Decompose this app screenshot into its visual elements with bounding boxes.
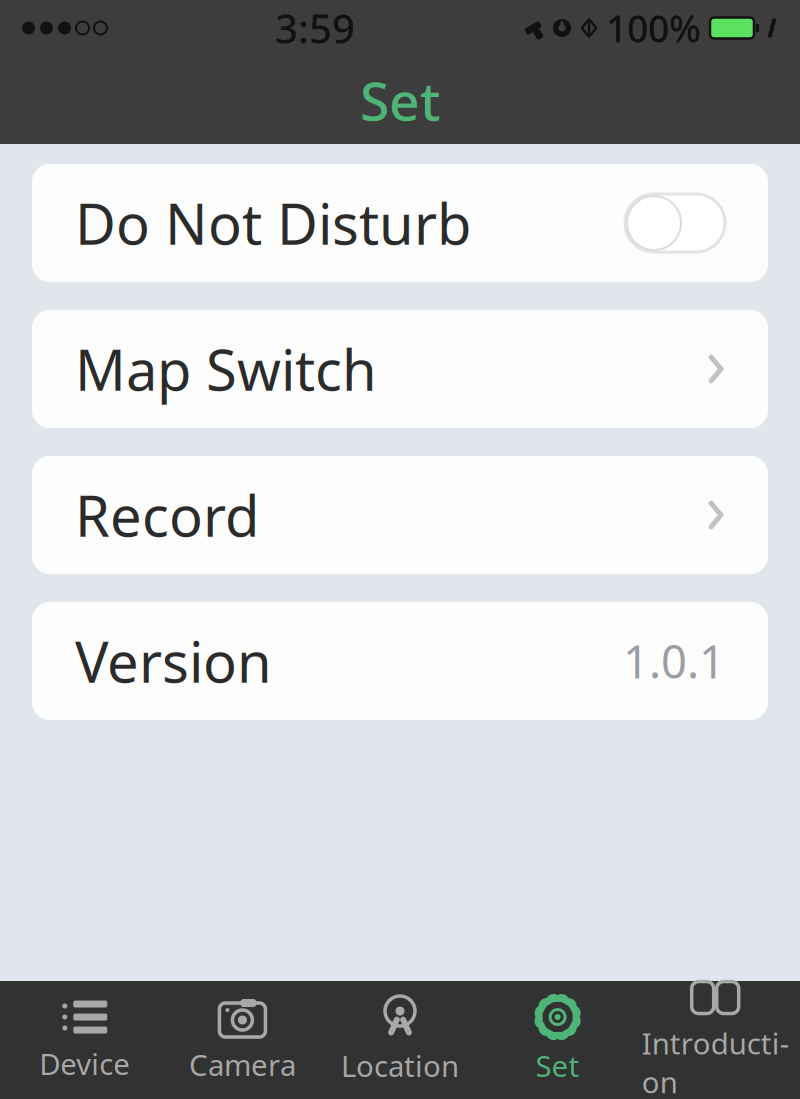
button[interactable]: Camera [164, 988, 321, 1092]
staticText: Location [341, 1046, 459, 1085]
staticText: Map Switch [75, 332, 377, 406]
staticText: 1.0.1 [623, 631, 725, 691]
staticText: 100% [606, 3, 701, 53]
button[interactable]: Location [321, 987, 479, 1093]
staticText: Record [75, 478, 259, 552]
staticText: 3:59 [275, 1, 355, 54]
staticText: Do Not Disturb [75, 186, 471, 260]
staticText: Set [536, 1046, 580, 1085]
button[interactable]: Set [479, 987, 636, 1093]
staticText: Set [360, 65, 440, 135]
button[interactable]: Map Switch [32, 310, 768, 428]
button[interactable]: Version [32, 602, 768, 720]
button[interactable]: Introduction [636, 970, 794, 1099]
button[interactable]: Record [32, 456, 768, 574]
staticText: Introduction [642, 1023, 789, 1099]
staticText: Device [39, 1044, 130, 1083]
staticText: Camera [189, 1045, 296, 1084]
staticText: Version [75, 624, 272, 698]
button[interactable]: Do Not Disturb [32, 164, 768, 282]
button[interactable]: Device [6, 989, 164, 1091]
